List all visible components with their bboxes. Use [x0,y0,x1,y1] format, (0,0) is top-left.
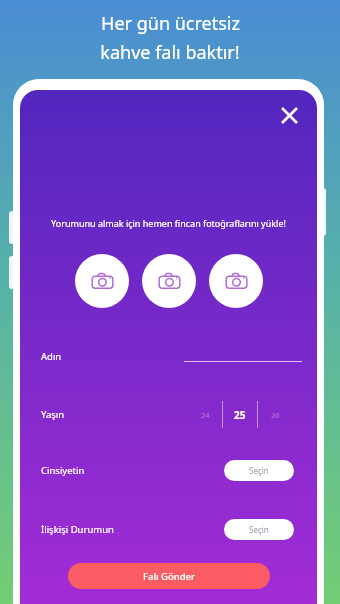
staticText: Adın [41,350,62,363]
button[interactable]: Falı Gönder [68,563,270,589]
staticText: 25 [234,408,246,422]
staticText: İlişkişi Durumun [41,523,114,536]
staticText: Seçin [249,465,269,476]
button[interactable]: Yaşın [20,392,317,436]
button[interactable]: Fotoğraf yükle [209,254,263,308]
staticText: Falı Gönder [143,570,196,583]
staticText: kahve falı baktır! [100,40,240,65]
button[interactable]: Adın [20,336,317,376]
button[interactable]: Fotoğraf yükle [75,254,129,308]
staticText: 26 [271,410,280,420]
staticText: Her gün ücretsiz [101,11,240,36]
staticText: Yaşın [41,408,65,421]
button[interactable]: Seçin [224,460,294,481]
staticText: Yorumunu almak için hemen fincan fotoğra… [28,217,309,229]
button[interactable]: Fotoğraf yükle [142,254,196,308]
staticText: Seçin [249,524,269,535]
staticText: 24 [201,410,210,420]
button[interactable]: Kapat [272,98,306,132]
button[interactable]: Seçin [224,519,294,540]
staticText: Cinsiyetin [41,464,85,477]
